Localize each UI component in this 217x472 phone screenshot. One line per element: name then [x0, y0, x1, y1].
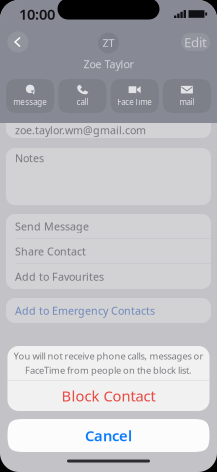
button[interactable]: Back — [7, 31, 28, 52]
staticText: FaceTime — [117, 97, 152, 107]
button[interactable]: Share Contact — [6, 239, 211, 264]
staticText: Add to Emergency Contacts — [15, 303, 155, 318]
staticText: Share Contact — [15, 244, 86, 258]
staticText: ZT — [102, 36, 114, 50]
staticText: Add to Favourites — [15, 269, 104, 284]
staticText: 10:00 — [19, 4, 55, 24]
staticText: Send Message — [15, 219, 89, 233]
staticText: call — [76, 97, 88, 107]
button[interactable]: Add to Favourites — [6, 264, 211, 289]
button[interactable]: Add to Emergency Contacts — [6, 298, 211, 323]
staticText: Notes — [15, 151, 44, 165]
button[interactable]: FaceTime — [110, 79, 159, 113]
button[interactable]: Edit — [181, 33, 210, 51]
staticText: Edit — [184, 33, 207, 51]
button[interactable]: mail — [163, 79, 211, 113]
staticText: Block Contact — [61, 386, 155, 405]
button[interactable]: Cancel — [7, 419, 209, 452]
staticText: message — [13, 97, 47, 107]
button[interactable]: message — [6, 79, 54, 113]
button[interactable]: call — [58, 79, 106, 113]
staticText: You will not receive phone calls, messag… — [13, 350, 203, 362]
staticText: mail — [179, 97, 194, 107]
staticText: zoe.taylor.wm@gmail.com — [15, 123, 146, 137]
button[interactable]: Block Contact — [7, 380, 209, 411]
staticText: Cancel — [85, 426, 132, 445]
button[interactable]: Send Message — [6, 214, 211, 239]
staticText: FaceTime from people on the block list. — [25, 364, 192, 376]
staticText: Zoe Taylor — [83, 57, 133, 71]
